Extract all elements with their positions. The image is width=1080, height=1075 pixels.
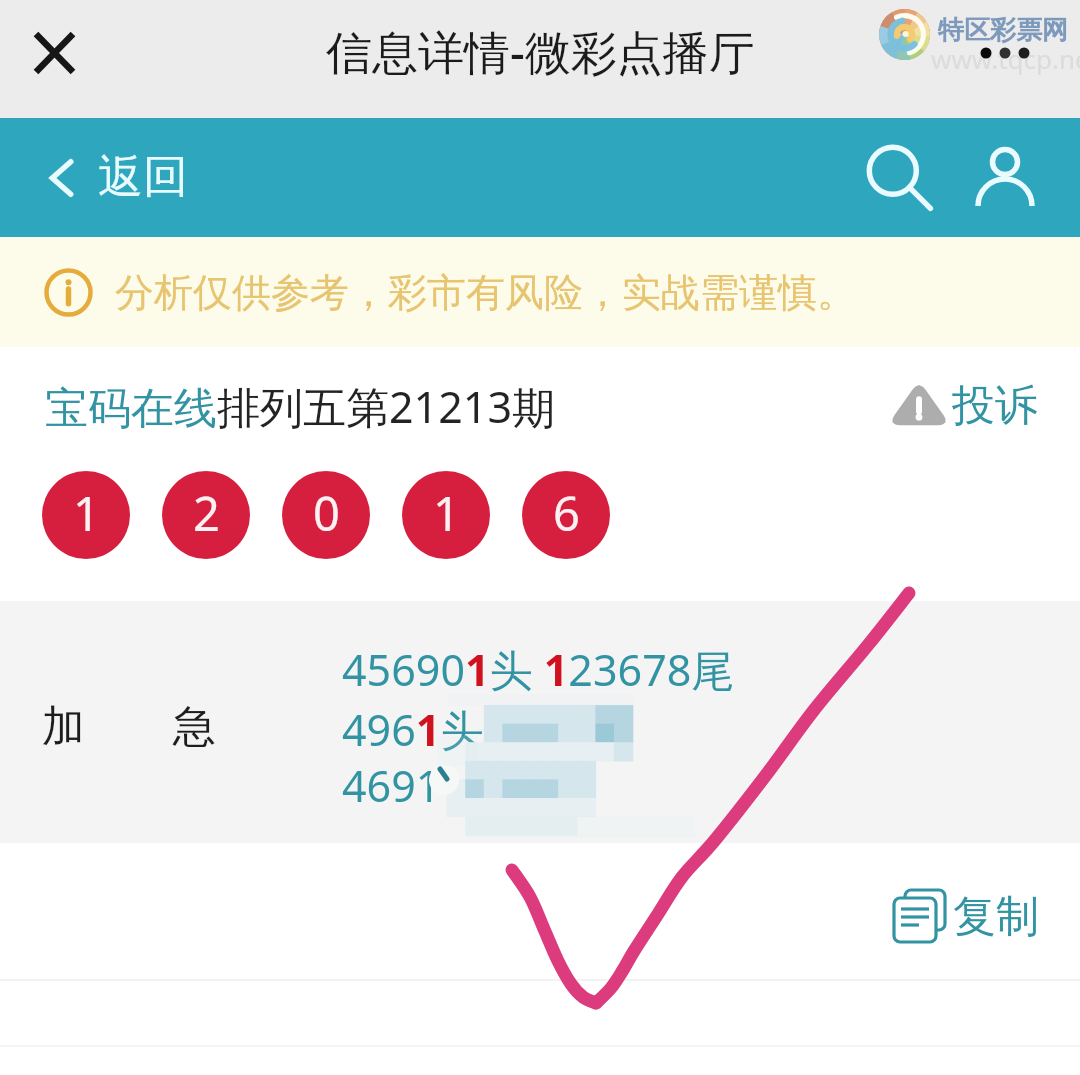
staticText: 1 xyxy=(433,481,460,545)
staticText: 分析仅供参考，彩市有风险，实战需谨慎。 xyxy=(115,268,856,317)
staticText: 4691 xyxy=(342,756,441,815)
button[interactable]: Close xyxy=(20,18,90,88)
staticText: 返回 xyxy=(98,149,188,206)
staticText: 复制 xyxy=(953,890,1039,944)
staticText: www.tqcp.net xyxy=(931,41,1080,76)
staticText: 456901头 123678尾 xyxy=(342,640,735,699)
staticText: 6 xyxy=(553,481,580,545)
staticText: 1 xyxy=(73,481,100,545)
staticText: 急 xyxy=(173,700,216,754)
staticText: 0 xyxy=(313,481,340,545)
button[interactable]: 投诉 xyxy=(891,378,1038,434)
staticText: 加 xyxy=(42,700,85,754)
button[interactable]: 返回 xyxy=(30,141,198,214)
staticText: 2 xyxy=(193,481,220,545)
button[interactable]: Search xyxy=(856,135,944,223)
staticText: 宝码在线排列五第21213期 xyxy=(45,377,555,436)
staticText: 投诉 xyxy=(952,379,1038,433)
staticText: 4961头 xyxy=(342,700,495,759)
staticText: 特区彩票网 xyxy=(938,14,1068,47)
staticText: 信息详情-微彩点播厅 xyxy=(326,20,755,83)
button[interactable]: 复制 xyxy=(890,889,1039,947)
button[interactable]: Account xyxy=(961,134,1049,222)
